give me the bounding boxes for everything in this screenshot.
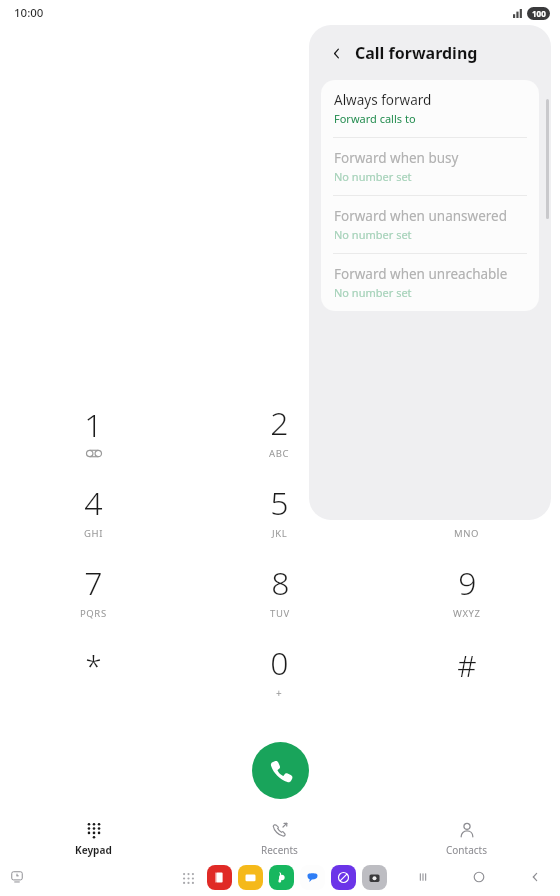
staticText: MNO: [454, 527, 480, 540]
button[interactable]: Always forward: [321, 80, 539, 137]
button[interactable]: 9: [373, 550, 560, 630]
button[interactable]: 0: [186, 630, 373, 710]
button[interactable]: 7: [0, 550, 186, 630]
staticText: 5: [270, 481, 289, 525]
staticText: 100: [532, 8, 546, 19]
button[interactable]: App: [269, 865, 294, 890]
button[interactable]: App: [207, 865, 232, 890]
button[interactable]: 5: [186, 470, 373, 550]
button[interactable]: Recent apps: [4, 864, 30, 890]
staticText: PQRS: [80, 607, 107, 620]
button[interactable]: Back: [323, 40, 349, 66]
button[interactable]: 2: [186, 390, 373, 470]
button[interactable]: Forward when unanswered: [321, 196, 539, 253]
staticText: 7: [84, 561, 103, 605]
staticText: *: [85, 645, 102, 686]
staticText: #: [457, 645, 477, 686]
staticText: 10:00: [14, 5, 44, 21]
staticText: WXYZ: [453, 607, 481, 620]
staticText: 8: [271, 561, 290, 605]
staticText: Contacts: [446, 843, 487, 857]
staticText: No number set: [334, 169, 412, 184]
button[interactable]: Forward when unreachable: [321, 254, 539, 311]
button[interactable]: 8: [186, 550, 373, 630]
staticText: Call forwarding: [355, 42, 478, 64]
staticText: Forward calls to: [334, 111, 416, 126]
staticText: Forward when unreachable: [334, 265, 508, 283]
button[interactable]: 1: [0, 390, 186, 470]
staticText: +: [276, 686, 283, 700]
button[interactable]: 4: [0, 470, 186, 550]
staticText: TUV: [270, 607, 290, 620]
staticText: Forward when busy: [334, 149, 459, 167]
button[interactable]: 6: [373, 470, 560, 550]
button[interactable]: App: [238, 865, 263, 890]
button[interactable]: Home: [468, 866, 490, 888]
staticText: Always forward: [334, 91, 432, 109]
staticText: Recents: [261, 843, 298, 857]
staticText: 9: [458, 561, 477, 605]
button[interactable]: Contacts: [373, 818, 560, 860]
staticText: 2: [270, 401, 289, 445]
staticText: 6: [458, 481, 477, 525]
button[interactable]: Recents: [186, 818, 373, 860]
staticText: ABC: [269, 447, 290, 460]
button[interactable]: App: [362, 865, 387, 890]
staticText: No number set: [334, 285, 412, 300]
button[interactable]: App: [331, 865, 356, 890]
button[interactable]: 3: [373, 390, 560, 470]
staticText: 4: [84, 481, 103, 525]
staticText: 0: [270, 641, 289, 685]
button[interactable]: Back: [524, 866, 546, 888]
staticText: No number set: [334, 227, 412, 242]
button[interactable]: Call: [252, 742, 309, 799]
button[interactable]: Keypad: [0, 818, 186, 860]
button[interactable]: Apps: [176, 866, 200, 890]
staticText: Keypad: [75, 843, 112, 857]
button[interactable]: Recent apps: [412, 866, 434, 888]
staticText: Forward when unanswered: [334, 207, 507, 225]
button[interactable]: App: [300, 865, 325, 890]
staticText: JKL: [272, 527, 288, 540]
staticText: GHI: [84, 527, 103, 540]
button[interactable]: Forward when busy: [321, 138, 539, 195]
button[interactable]: #: [373, 630, 560, 710]
button[interactable]: *: [0, 630, 186, 710]
staticText: 1: [84, 403, 103, 447]
